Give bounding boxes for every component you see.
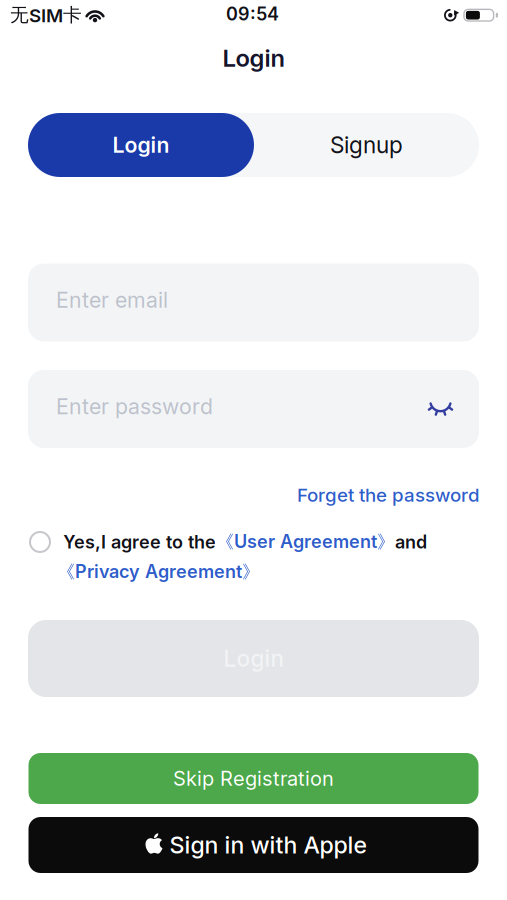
staticText: 09:54	[226, 3, 279, 25]
staticText: Signup	[330, 132, 403, 158]
button[interactable]: 《User Agreement》	[216, 531, 395, 553]
staticText: 无SIM卡	[10, 3, 82, 26]
staticText: Login	[112, 132, 169, 158]
staticText: Enter email	[56, 287, 168, 313]
staticText: Skip Registration	[173, 767, 334, 790]
staticText: Yes,I agree to the	[63, 531, 216, 553]
button[interactable]: Login	[28, 113, 254, 177]
textField[interactable]: Enter email	[56, 290, 455, 315]
staticText: 《Privacy Agreement》	[57, 561, 260, 583]
staticText: Login	[222, 44, 284, 72]
staticText: Enter email	[56, 290, 168, 315]
button[interactable]: Forget the password	[297, 484, 480, 506]
staticText: Forget the password	[297, 484, 480, 506]
staticText: Sign in with Apple	[169, 831, 367, 859]
button[interactable]: Skip Registration	[28, 753, 478, 804]
button[interactable]: Show password	[428, 400, 453, 417]
staticText: 《User Agreement》	[216, 531, 395, 553]
button[interactable]: Signup	[254, 113, 479, 177]
staticText: Enter password	[56, 396, 213, 422]
button[interactable]: Sign in with Apple	[28, 817, 478, 873]
staticText: and	[395, 531, 427, 553]
button[interactable]: Agree to the agreements	[29, 531, 51, 553]
secureTextField[interactable]: Enter password	[56, 396, 242, 422]
staticText: Enter password	[56, 394, 213, 419]
staticText: Login	[223, 645, 283, 672]
button[interactable]: 《Privacy Agreement》	[57, 561, 260, 583]
